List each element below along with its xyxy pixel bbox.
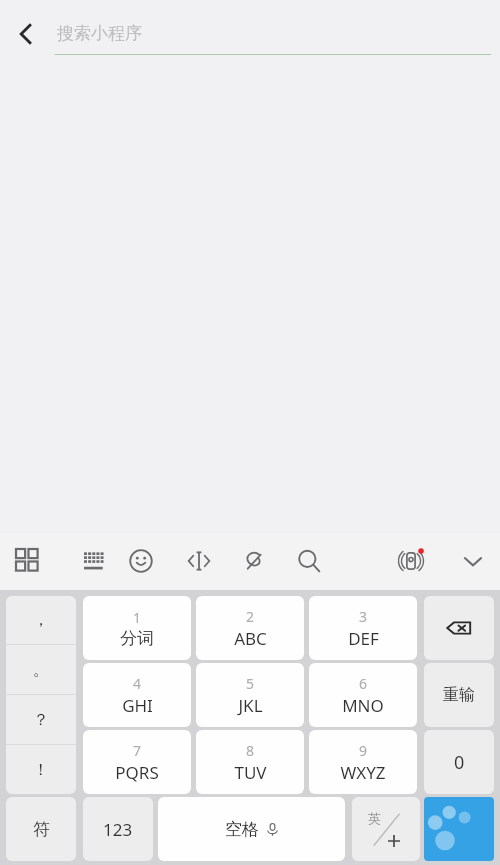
button[interactable]: 6: [309, 663, 417, 727]
staticText: 6: [359, 674, 368, 693]
button[interactable]: Search: [289, 541, 329, 581]
staticText: 。: [33, 660, 49, 680]
button[interactable]: Enter: [424, 797, 494, 861]
staticText: ABC: [234, 627, 267, 650]
button[interactable]: Hide keyboard: [453, 541, 493, 581]
button[interactable]: ？: [6, 695, 76, 744]
staticText: 3: [359, 607, 368, 626]
staticText: MNO: [342, 694, 384, 717]
button[interactable]: 123: [83, 797, 153, 861]
button[interactable]: Back: [4, 12, 48, 56]
staticText: 7: [133, 741, 142, 760]
button[interactable]: Switch to English: [352, 797, 420, 861]
staticText: 0: [454, 750, 465, 775]
staticText: ！: [33, 760, 49, 780]
staticText: 符: [33, 819, 50, 840]
button[interactable]: 3: [309, 596, 417, 660]
button[interactable]: ，: [6, 596, 76, 644]
button[interactable]: 重输: [424, 663, 494, 727]
staticText: 搜索小程序: [57, 23, 142, 44]
staticText: ，: [33, 610, 49, 630]
staticText: 5: [246, 674, 255, 693]
button[interactable]: 符: [6, 797, 76, 861]
staticText: ？: [33, 710, 49, 730]
staticText: WXYZ: [340, 761, 386, 784]
button[interactable]: Clipboard: [233, 541, 273, 581]
button[interactable]: 1: [83, 596, 191, 660]
button[interactable]: Voice input device: [391, 541, 431, 581]
staticText: TUV: [234, 761, 267, 784]
staticText: 8: [246, 741, 255, 760]
staticText: PQRS: [115, 761, 159, 784]
button[interactable]: 5: [196, 663, 304, 727]
button[interactable]: 4: [83, 663, 191, 727]
button[interactable]: Move cursor: [179, 541, 219, 581]
button[interactable]: 8: [196, 730, 304, 794]
button[interactable]: 9: [309, 730, 417, 794]
staticText: DEF: [348, 627, 379, 650]
button[interactable]: Emoji: [121, 541, 161, 581]
button[interactable]: 。: [6, 645, 76, 694]
staticText: 9: [359, 741, 368, 760]
staticText: GHI: [122, 694, 153, 717]
staticText: JKL: [238, 694, 263, 717]
staticText: 2: [246, 607, 255, 626]
staticText: 重输: [443, 685, 475, 705]
staticText: 分词: [120, 628, 154, 649]
staticText: 1: [133, 608, 142, 627]
button[interactable]: Grid: [8, 541, 48, 581]
button[interactable]: ！: [6, 745, 76, 794]
staticText: 123: [103, 818, 133, 841]
button[interactable]: Backspace: [424, 596, 494, 660]
staticText: 空格: [225, 819, 259, 840]
button[interactable]: 2: [196, 596, 304, 660]
button[interactable]: Keyboard layout: [76, 541, 116, 581]
staticText: 4: [133, 674, 142, 693]
staticText: 英: [368, 810, 381, 826]
button[interactable]: 0: [424, 730, 494, 794]
button[interactable]: 7: [83, 730, 191, 794]
button[interactable]: 空格: [158, 797, 345, 861]
